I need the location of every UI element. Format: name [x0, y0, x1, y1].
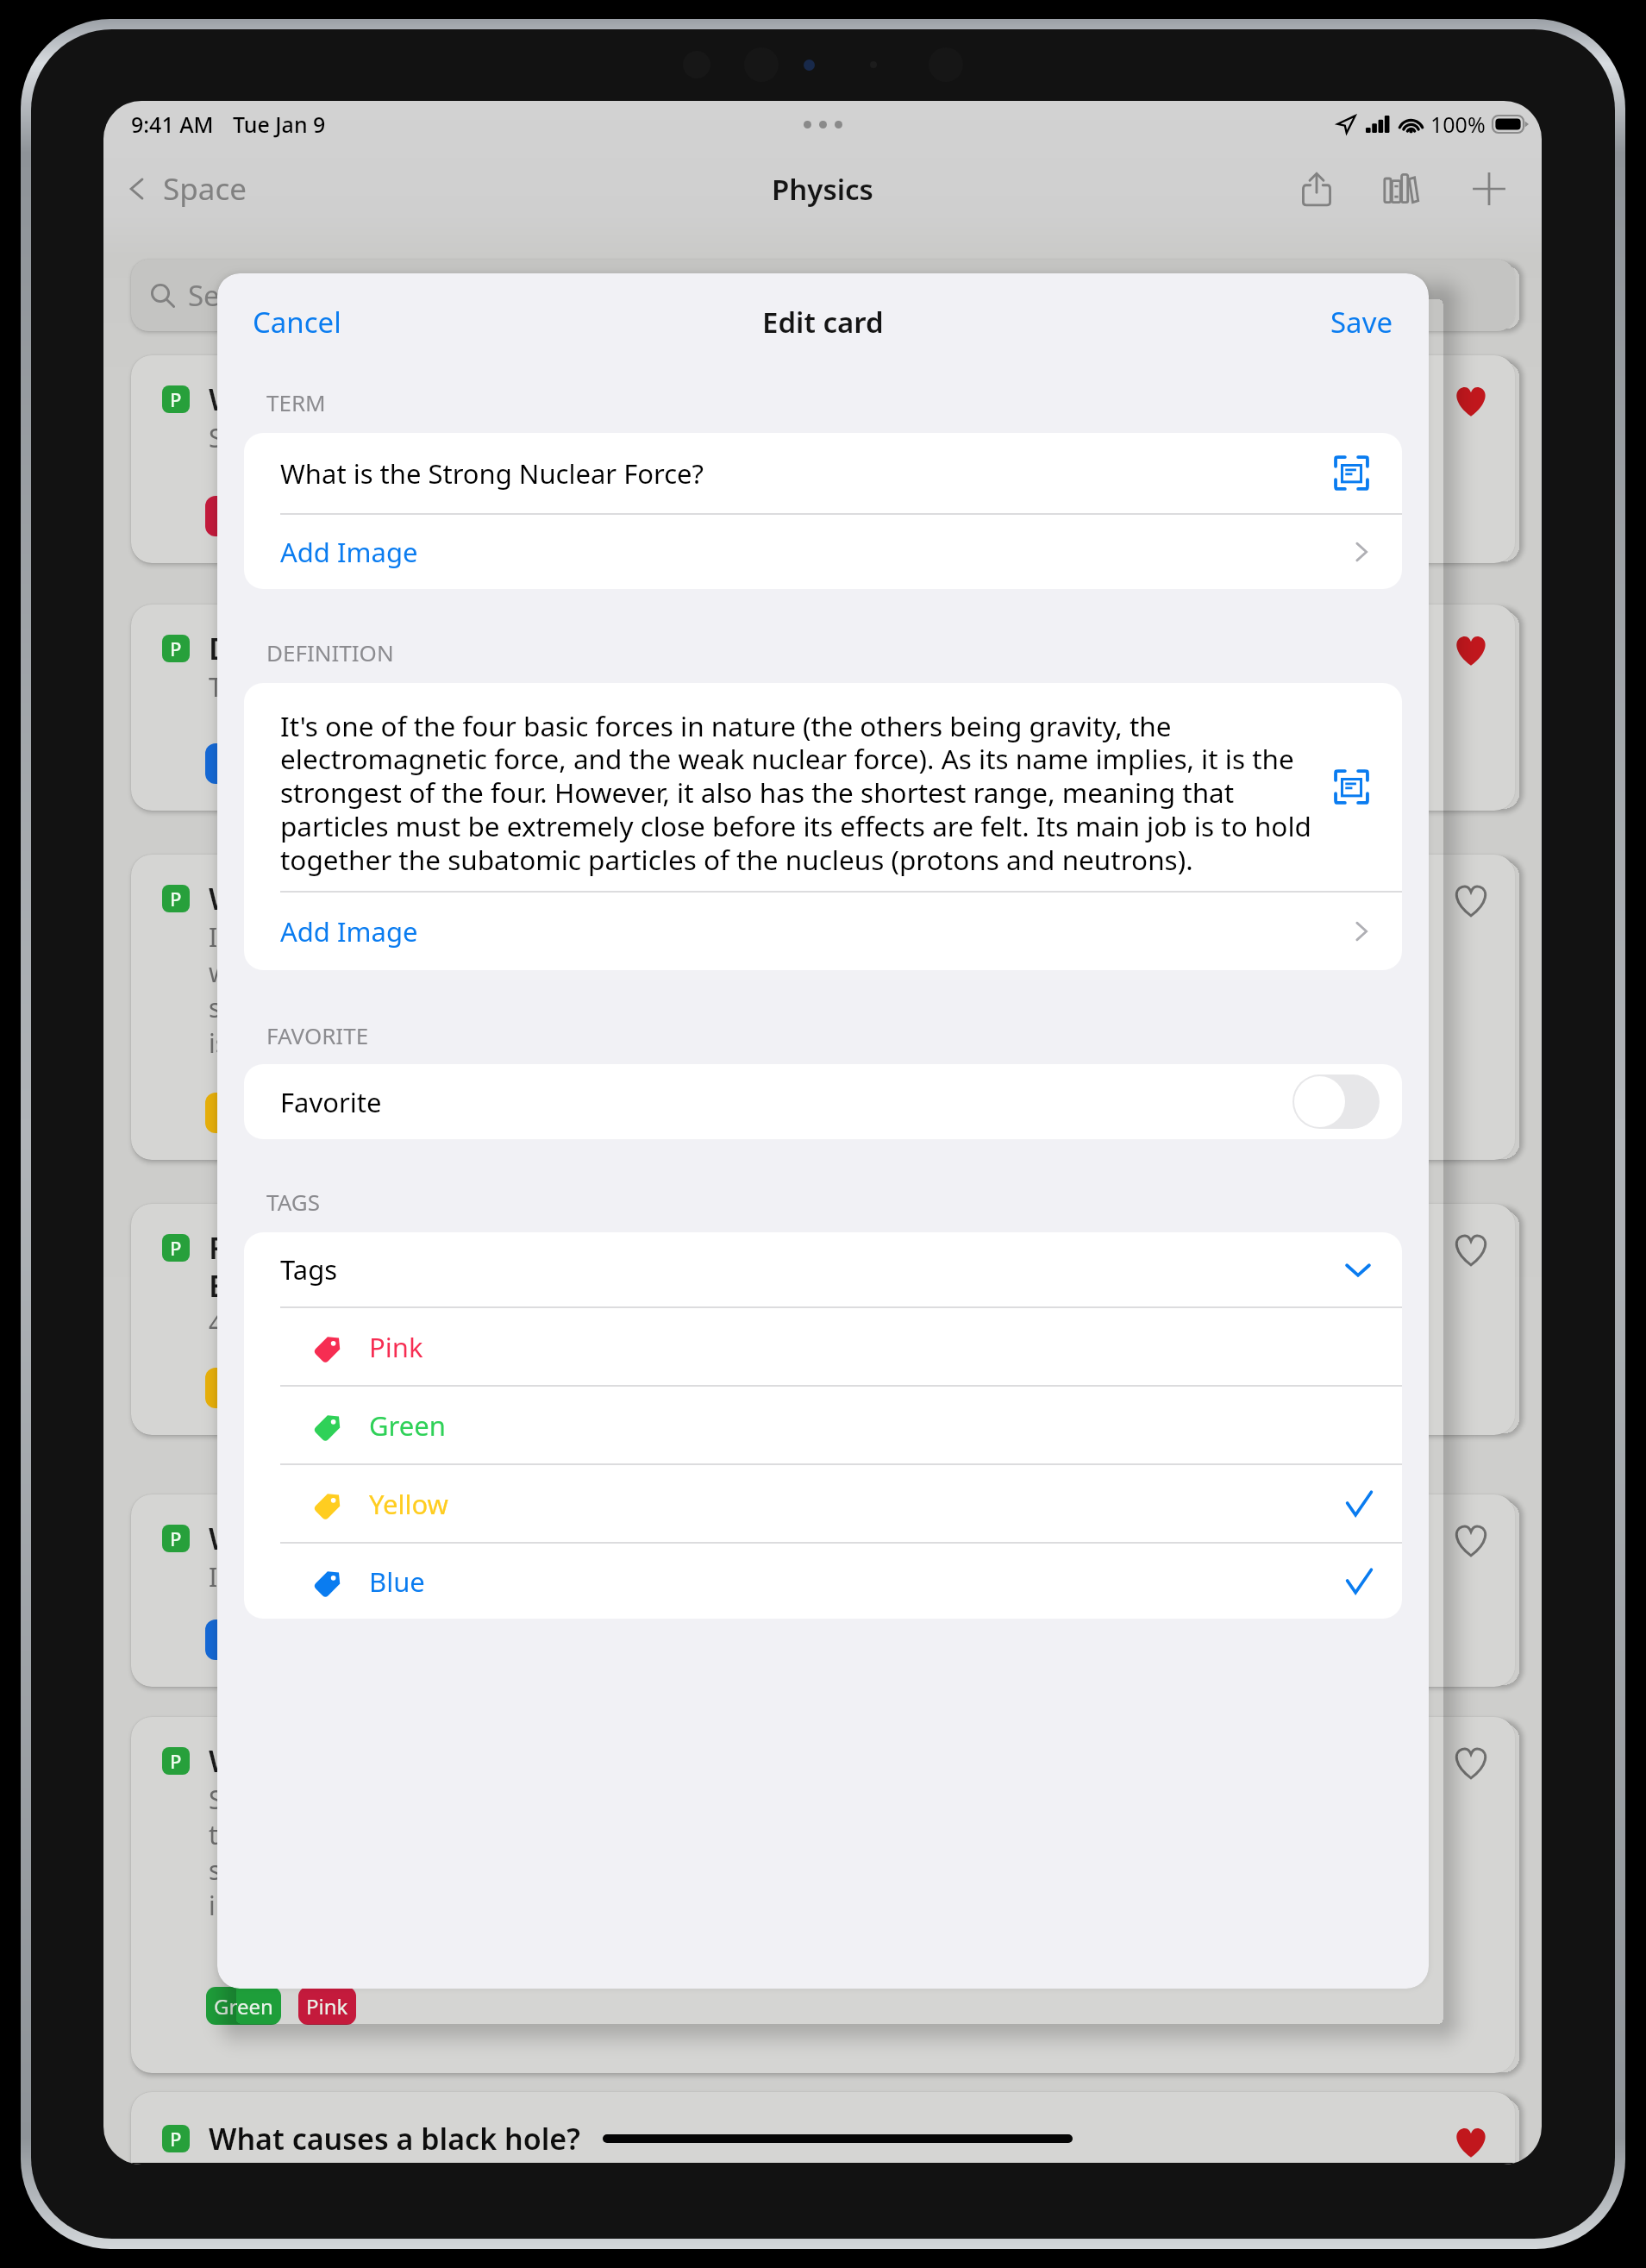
staticText: P	[170, 636, 182, 661]
staticText: 4 basic forces ...	[209, 1306, 401, 1341]
button[interactable]: P	[131, 1717, 1515, 2073]
button[interactable]: Save	[1305, 287, 1419, 357]
staticText: Favorite	[280, 1084, 1292, 1120]
button[interactable]: Space	[114, 161, 257, 216]
staticText: Fundamental Elements	[209, 1227, 404, 1306]
staticText: Physics	[772, 170, 873, 209]
staticText: P	[170, 886, 182, 912]
staticText: Pink	[306, 1992, 348, 2021]
staticText: P	[170, 2126, 182, 2152]
button[interactable]: Add Image	[244, 893, 1402, 970]
staticText: What is Entropy?	[209, 1740, 455, 1782]
staticText: Blue	[369, 1563, 1346, 1600]
staticText: What is a Quark?	[209, 1518, 457, 1559]
button[interactable]: P	[131, 1204, 1515, 1435]
staticText: What is Gravity?	[209, 379, 447, 420]
staticText: TERM	[266, 387, 326, 417]
staticText: Space	[163, 168, 247, 210]
button[interactable]: Favorite	[1452, 1744, 1490, 1782]
button[interactable]: P	[131, 1494, 1515, 1687]
button[interactable]: Green	[244, 1387, 1402, 1463]
staticText: Space is curved ...	[209, 420, 423, 455]
button[interactable]: P	[131, 355, 1515, 563]
staticText: P	[170, 386, 182, 412]
button[interactable]: P	[131, 605, 1515, 811]
button[interactable]: Share	[1287, 160, 1346, 218]
button[interactable]: Favorite toggle	[1292, 1074, 1380, 1129]
staticText: What causes a black hole?	[209, 2119, 580, 2158]
staticText: TAGS	[266, 1187, 320, 1217]
staticText: Tue Jan 9	[233, 110, 326, 139]
staticText: is very important	[209, 1025, 416, 1061]
staticText: What is Relativity?	[209, 878, 479, 919]
staticText: Add Image	[280, 913, 1350, 949]
staticText: The invisible mass ...	[209, 669, 457, 705]
staticText: thermodynamics	[209, 1817, 415, 1852]
staticText: Yellow	[369, 1486, 1346, 1522]
button[interactable]: Library	[1374, 160, 1432, 218]
staticText: It's a theory that	[209, 919, 409, 955]
staticText: Green	[214, 1992, 273, 2021]
staticText: Dark Matter	[209, 628, 389, 669]
staticText: P	[170, 1235, 182, 1261]
staticText: DEFINITION	[266, 637, 394, 667]
button[interactable]: Search	[131, 260, 1515, 331]
button[interactable]: Cancel	[227, 287, 367, 357]
staticText: Edit card	[762, 303, 884, 341]
staticText: 9:41 AM	[131, 110, 214, 139]
staticText: It's one of the four basic forces in nat…	[280, 707, 1315, 878]
button[interactable]: Favorite	[1452, 881, 1490, 919]
button[interactable]: Blue	[244, 1544, 1402, 1619]
button[interactable]: Add Image	[244, 515, 1402, 589]
button[interactable]: P	[131, 2092, 1515, 2165]
button[interactable]: Favorite	[1452, 1521, 1490, 1559]
staticText: Tags	[280, 1251, 1343, 1287]
button[interactable]: Favorite	[1452, 2123, 1490, 2161]
staticText: 100%	[1430, 110, 1486, 139]
button[interactable]: P	[131, 855, 1515, 1160]
button[interactable]: Favorite	[1452, 1231, 1490, 1269]
button[interactable]: Add card	[1460, 160, 1518, 218]
button[interactable]: Favorite	[1452, 631, 1490, 669]
staticText: Pink	[369, 1329, 1373, 1365]
staticText: FAVORITE	[266, 1020, 369, 1050]
staticText: What is the Strong Nuclear Force?	[280, 455, 1332, 492]
staticText: Add Image	[280, 534, 1350, 570]
staticText: It's a particle ...	[209, 1559, 391, 1594]
button[interactable]: Pink	[244, 1308, 1402, 1385]
staticText: information in a	[209, 1888, 404, 1923]
staticText: someone famous and	[209, 990, 473, 1025]
staticText: states that the	[209, 1852, 385, 1888]
staticText: was published by	[209, 955, 418, 990]
staticText: Second law of	[209, 1782, 378, 1817]
staticText: P	[170, 1526, 182, 1551]
staticText: Green	[369, 1407, 1373, 1444]
button[interactable]: Yellow	[244, 1465, 1402, 1542]
staticText: P	[170, 1748, 182, 1774]
button[interactable]: Favorite	[1452, 382, 1490, 420]
staticText: Search	[188, 276, 279, 315]
button[interactable]: Tags	[244, 1232, 1402, 1306]
